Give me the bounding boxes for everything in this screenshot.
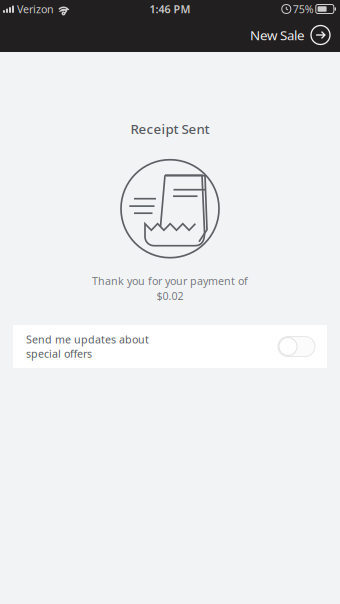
staticText: Thank you for your payment of: [92, 274, 248, 288]
staticText: $0.02: [156, 289, 183, 303]
staticText: Send me updates about special offers: [26, 332, 149, 361]
button[interactable]: Send me updates about special offers: [13, 325, 327, 368]
staticText: Receipt Sent: [130, 120, 209, 138]
staticText: 1:46 PM: [149, 2, 190, 16]
staticText: Verizon: [17, 2, 54, 16]
button[interactable]: New Sale: [240, 18, 340, 52]
staticText: New Sale: [250, 26, 305, 44]
staticText: 75%: [293, 2, 314, 16]
